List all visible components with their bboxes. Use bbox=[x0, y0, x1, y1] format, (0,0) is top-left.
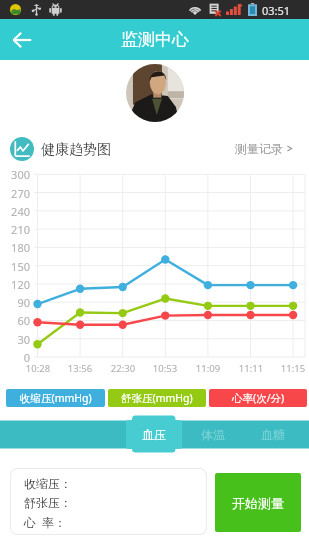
staticText: 180 bbox=[0, 240, 30, 255]
staticText: 开始测量 bbox=[232, 495, 284, 511]
staticText: 11:11 bbox=[233, 362, 269, 375]
staticText: 收缩压(mmHg) bbox=[20, 391, 92, 405]
button[interactable]: 血糖 bbox=[248, 420, 298, 448]
staticText: 150 bbox=[0, 259, 30, 274]
staticText: 120 bbox=[0, 277, 30, 292]
staticText: 90 bbox=[0, 295, 30, 310]
staticText: 03:51 bbox=[262, 3, 291, 18]
staticText: 22:30 bbox=[105, 362, 141, 375]
staticText: 心率(次/分) bbox=[232, 391, 285, 405]
staticText: 270 bbox=[0, 186, 30, 201]
staticText: 11:15 bbox=[275, 362, 309, 375]
staticText: 收缩压： bbox=[24, 476, 72, 491]
staticText: 血糖 bbox=[261, 427, 285, 442]
staticText: 监测中心 bbox=[121, 29, 189, 50]
button[interactable]: 开始测量 bbox=[215, 473, 301, 532]
staticText: 10:53 bbox=[147, 362, 183, 375]
button[interactable]: 测量记录 bbox=[235, 141, 293, 156]
staticText: 210 bbox=[0, 222, 30, 237]
staticText: 舒张压(mmHg) bbox=[121, 391, 193, 405]
button[interactable]: 收缩压(mmHg) bbox=[6, 389, 105, 407]
button[interactable]: Back bbox=[4, 22, 40, 58]
staticText: 测量记录 bbox=[235, 141, 283, 156]
button[interactable]: 血压 bbox=[126, 415, 182, 453]
staticText: 11:09 bbox=[190, 362, 226, 375]
button[interactable]: 舒张压(mmHg) bbox=[108, 389, 206, 407]
staticText: 10:28 bbox=[20, 362, 56, 375]
staticText: 13:56 bbox=[62, 362, 98, 375]
button[interactable]: 体温 bbox=[188, 420, 238, 448]
staticText: 心 率： bbox=[24, 514, 67, 530]
staticText: 体温 bbox=[201, 427, 225, 442]
staticText: 健康趋势图 bbox=[41, 141, 111, 159]
button[interactable]: 心率(次/分) bbox=[209, 389, 307, 407]
staticText: 300 bbox=[0, 167, 30, 182]
staticText: 舒张压： bbox=[24, 495, 72, 510]
staticText: 血压 bbox=[142, 427, 166, 442]
staticText: 60 bbox=[0, 313, 30, 328]
staticText: 30 bbox=[0, 332, 30, 347]
staticText: 0 bbox=[0, 350, 30, 365]
staticText: 240 bbox=[0, 204, 30, 219]
